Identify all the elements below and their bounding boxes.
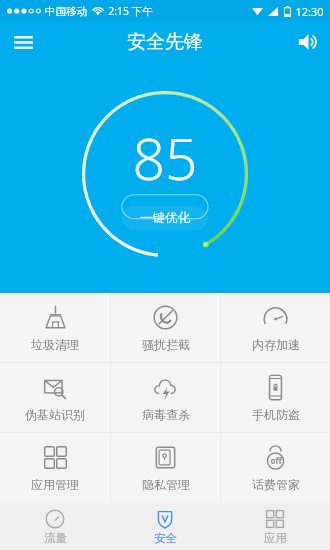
staticText: 应用管理 — [31, 477, 79, 492]
staticText: 一键优化 — [140, 210, 190, 226]
staticText: 12:30 — [295, 4, 324, 19]
button[interactable]: 手机防盗 — [221, 363, 330, 432]
button[interactable]: 垃圾清理 — [0, 293, 110, 362]
button[interactable]: 应用 — [220, 503, 330, 550]
staticText: 安全 — [154, 531, 177, 545]
button[interactable]: 骚扰拦截 — [111, 293, 220, 362]
staticText: off — [270, 455, 282, 466]
staticText: 病毒查杀 — [142, 407, 190, 422]
button[interactable]: 病毒查杀 — [111, 363, 220, 432]
staticText: 中国移动 — [45, 5, 87, 18]
staticText: 安全先锋 — [127, 30, 203, 54]
staticText: 2:15 下午 — [108, 4, 153, 18]
staticText: 骚扰拦截 — [142, 337, 190, 352]
button[interactable]: 流量 — [0, 503, 110, 550]
button[interactable]: 隐私管理 — [111, 433, 220, 502]
button[interactable]: 内存加速 — [221, 293, 330, 362]
button[interactable]: 伪基站识别 — [0, 363, 110, 432]
staticText: 话费管家 — [252, 477, 300, 492]
button[interactable]: 应用管理 — [0, 433, 110, 502]
staticText: 应用 — [264, 531, 287, 545]
staticText: 隐私管理 — [142, 477, 190, 492]
staticText: 内存加速 — [252, 337, 300, 352]
button[interactable]: off — [221, 433, 330, 502]
button[interactable]: Sound — [286, 22, 330, 62]
staticText: 85 — [132, 119, 198, 197]
button[interactable]: 一键优化 — [122, 206, 208, 230]
button[interactable]: Menu — [0, 22, 46, 62]
staticText: 手机防盗 — [252, 407, 300, 422]
button[interactable]: 安全 — [110, 503, 220, 550]
staticText: 流量 — [44, 531, 67, 545]
staticText: 垃圾清理 — [31, 337, 79, 352]
staticText: 伪基站识别 — [25, 407, 85, 422]
